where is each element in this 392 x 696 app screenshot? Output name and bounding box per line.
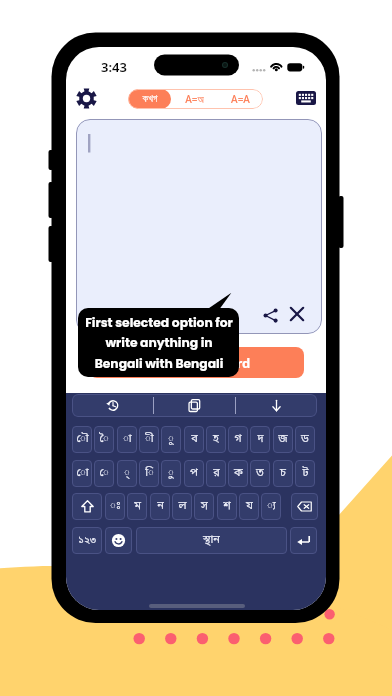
button[interactable]: ১২৩ (72, 527, 102, 554)
button[interactable]: Share (76, 119, 322, 334)
button[interactable]: দ (250, 426, 270, 453)
button[interactable]: ্ (117, 460, 137, 487)
staticText: ল (178, 499, 187, 514)
button[interactable]: ক (228, 460, 248, 487)
button[interactable]: ে (94, 460, 114, 487)
button[interactable]: া (117, 426, 137, 453)
staticText: ো (76, 466, 89, 481)
button[interactable]: History (72, 394, 153, 417)
button[interactable]: ো (72, 460, 92, 487)
staticText: ু (168, 466, 174, 481)
button[interactable]: ব (184, 426, 204, 453)
staticText: শ (223, 499, 231, 514)
button[interactable]: Backspace (291, 493, 318, 520)
button[interactable]: গ (228, 426, 248, 453)
staticText: ন (157, 499, 164, 514)
staticText: ত (256, 466, 264, 481)
button[interactable]: শ (217, 493, 237, 520)
button[interactable]: A=অ (171, 89, 217, 109)
button[interactable]: A=A (217, 89, 263, 109)
button[interactable]: ৈ (94, 426, 114, 453)
staticText: ম (134, 499, 141, 514)
button[interactable]: First selected option for write anything… (78, 308, 239, 377)
button[interactable]: ম (127, 493, 147, 520)
button[interactable]: Emoji (105, 527, 132, 554)
staticText: র (213, 466, 220, 481)
staticText: ্য (267, 499, 276, 514)
staticText: 3:43 (101, 58, 127, 76)
staticText: A=A (231, 92, 250, 106)
button[interactable]: প (184, 460, 204, 487)
staticText: ট (302, 466, 309, 481)
staticText: ৈ (99, 432, 109, 447)
staticText: ে (99, 466, 109, 481)
button[interactable]: জ (273, 426, 293, 453)
button[interactable]: ী (139, 426, 159, 453)
staticText: স্থান (203, 533, 220, 548)
button[interactable]: ন (150, 493, 170, 520)
staticText: ঃ (110, 499, 121, 514)
button[interactable]: চ (273, 460, 293, 487)
button[interactable]: ঃ (105, 493, 125, 520)
button[interactable]: ড (295, 426, 315, 453)
staticText: ক (234, 466, 243, 481)
staticText: ৌ (76, 432, 89, 447)
button[interactable]: ত (250, 460, 270, 487)
staticText: জ (278, 432, 288, 447)
staticText: ূ (168, 432, 174, 447)
button[interactable]: Enter (290, 527, 317, 554)
staticText: Enable Keyboard (142, 354, 251, 372)
button[interactable]: স (194, 493, 214, 520)
staticText: ি (145, 466, 154, 481)
button[interactable]: ্য (261, 493, 281, 520)
button[interactable]: Settings (76, 88, 97, 109)
staticText: ড (301, 432, 309, 447)
button[interactable]: ু (161, 460, 181, 487)
staticText: First selected option for write anything… (85, 314, 233, 372)
button[interactable]: ল (172, 493, 192, 520)
button[interactable]: Clipboard (154, 394, 235, 417)
button[interactable]: হ (206, 426, 226, 453)
button[interactable]: স্থান (136, 527, 287, 554)
button[interactable]: কখগ (128, 89, 171, 109)
staticText: প (190, 466, 198, 481)
staticText: কখগ (142, 94, 158, 104)
staticText: দ (257, 432, 264, 447)
button[interactable]: Close (286, 303, 308, 325)
button[interactable]: য (239, 493, 259, 520)
staticText: চ (280, 466, 286, 481)
staticText: য (246, 499, 253, 514)
button[interactable]: ৌ (72, 426, 92, 453)
button[interactable]: ূ (161, 426, 181, 453)
staticText: A=অ (185, 92, 204, 106)
button[interactable]: ি (139, 460, 159, 487)
staticText: ব (191, 432, 198, 447)
button[interactable]: Share (259, 304, 281, 326)
staticText: হ (213, 432, 219, 447)
button[interactable]: Shift (72, 493, 102, 520)
staticText: ্ (124, 466, 130, 481)
button[interactable]: Keyboard (296, 91, 316, 105)
staticText: া (123, 432, 132, 447)
staticText: স (201, 499, 208, 514)
button[interactable]: ট (295, 460, 315, 487)
staticText: গ (234, 432, 242, 447)
button[interactable]: র (206, 460, 226, 487)
button[interactable]: Hide keyboard (236, 394, 317, 417)
staticText: ১২৩ (78, 534, 96, 547)
staticText: ী (145, 432, 154, 447)
button[interactable]: Enable Keyboard (89, 347, 304, 378)
